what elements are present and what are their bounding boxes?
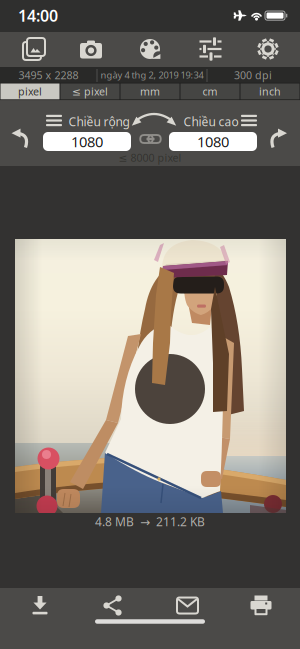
- button[interactable]: inch: [240, 83, 299, 99]
- button[interactable]: 1080: [169, 132, 257, 151]
- staticText: 14:00: [18, 5, 58, 26]
- staticText: Chiều cao: [183, 113, 238, 129]
- button[interactable]: [10, 587, 70, 623]
- button[interactable]: [4, 122, 40, 152]
- staticText: ngày 4 thg 2, 2019 19:34: [100, 69, 203, 81]
- staticText: Chiều rộng: [68, 113, 129, 129]
- staticText: pixel: [18, 84, 42, 98]
- button[interactable]: [231, 587, 291, 623]
- button[interactable]: [258, 122, 294, 152]
- staticText: mm: [140, 84, 160, 98]
- staticText: 1080: [197, 132, 229, 151]
- staticText: ≤ pixel: [72, 84, 108, 98]
- staticText: cm: [202, 84, 217, 98]
- button[interactable]: pixel: [0, 83, 59, 99]
- staticText: 4.8 MB → 211.2 KB: [95, 513, 205, 529]
- button[interactable]: [183, 31, 237, 66]
- button[interactable]: [64, 31, 118, 66]
- staticText: 3495 x 2288: [18, 68, 78, 82]
- button[interactable]: [83, 587, 143, 623]
- staticText: inch: [259, 84, 281, 98]
- button[interactable]: cm: [180, 83, 239, 99]
- button[interactable]: [7, 31, 61, 66]
- staticText: 1080: [71, 132, 103, 151]
- button[interactable]: mm: [120, 83, 179, 99]
- staticText: ≤ 8000 pixel: [118, 150, 181, 165]
- staticText: 300 dpi: [234, 68, 272, 82]
- button[interactable]: [135, 129, 165, 149]
- button[interactable]: [157, 587, 217, 623]
- button[interactable]: 1080: [43, 132, 131, 151]
- button[interactable]: ≤ pixel: [60, 83, 119, 99]
- button[interactable]: [123, 31, 177, 66]
- button[interactable]: [241, 31, 295, 66]
